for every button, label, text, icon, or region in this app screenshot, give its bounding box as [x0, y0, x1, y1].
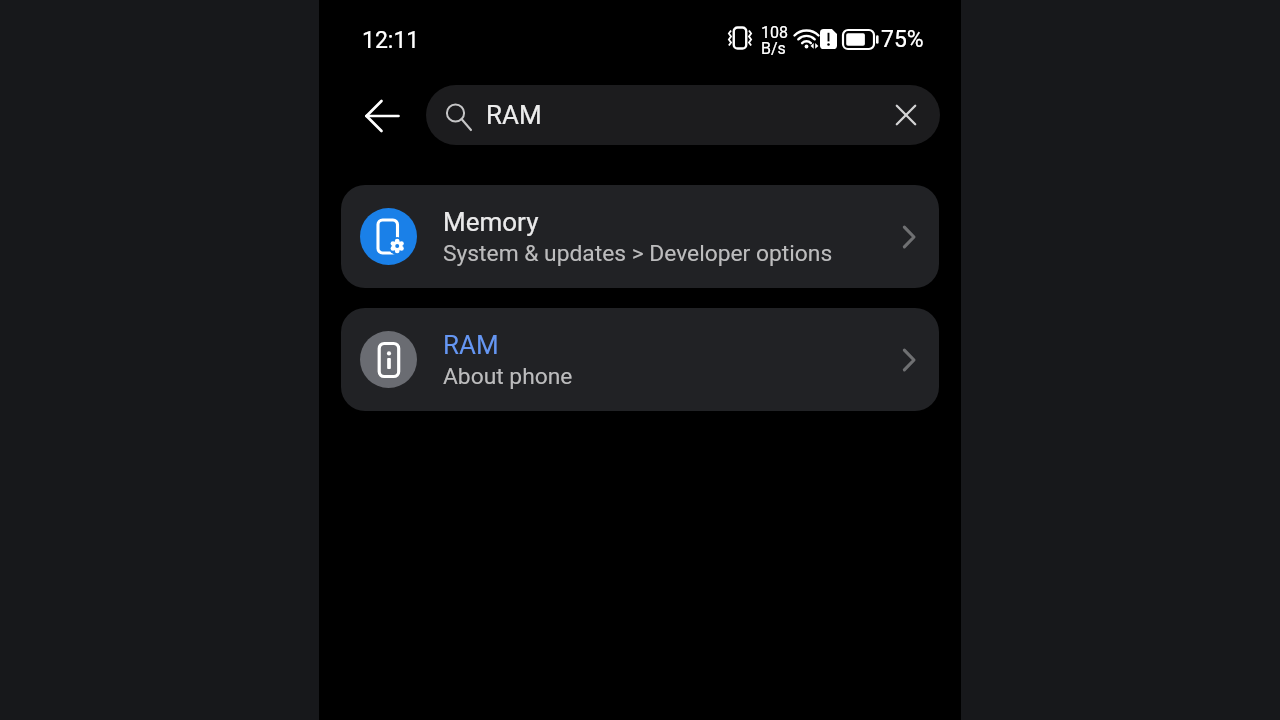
staticText: 75%: [881, 26, 924, 53]
staticText: 108: [761, 23, 788, 42]
button[interactable]: Back: [343, 93, 389, 139]
button[interactable]: RAM: [426, 85, 940, 145]
staticText: B/s: [761, 39, 786, 58]
staticText: Memory: [443, 207, 539, 237]
staticText: 12:11: [362, 27, 420, 54]
staticText: About phone: [443, 363, 573, 390]
button[interactable]: RAM: [341, 308, 939, 411]
staticText: RAM: [486, 100, 542, 130]
staticText: RAM: [443, 330, 499, 360]
button[interactable]: Clear search: [886, 91, 934, 139]
staticText: System & updates > Developer options: [443, 240, 833, 267]
button[interactable]: Memory: [341, 185, 939, 288]
